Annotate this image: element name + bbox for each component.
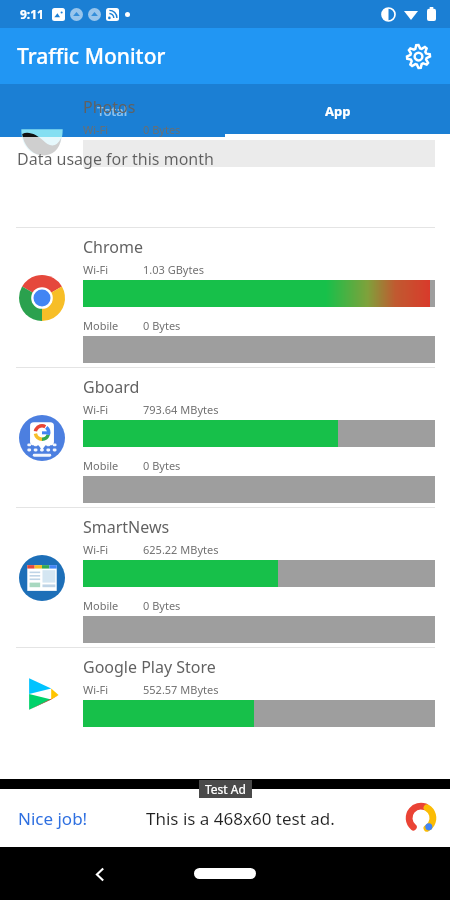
button[interactable]: Total <box>0 84 225 137</box>
staticText: 1.03 GBytes <box>143 262 204 277</box>
button[interactable]: Nice job! <box>0 789 450 847</box>
button[interactable]: Settings <box>396 34 440 78</box>
button[interactable]: Back <box>82 856 118 892</box>
staticText: Wi-Fi <box>83 402 109 417</box>
staticText: SmartNews <box>83 516 170 538</box>
staticText: Mobile <box>83 598 119 613</box>
button[interactable]: Photos <box>0 88 450 178</box>
button[interactable]: SmartNews <box>0 508 450 647</box>
staticText: Total <box>97 102 128 120</box>
staticText: 0 Bytes <box>143 598 181 613</box>
staticText: 552.57 MBytes <box>143 682 219 697</box>
staticText: Data usage for this month <box>17 148 214 170</box>
button[interactable]: App <box>225 84 450 137</box>
button[interactable]: Google Play Store <box>0 648 450 740</box>
staticText: 625.22 MBytes <box>143 542 219 557</box>
button[interactable]: Home <box>194 868 256 879</box>
staticText: Gboard <box>83 376 140 398</box>
staticText: Wi-Fi <box>83 122 109 137</box>
staticText: Traffic Monitor <box>17 42 166 71</box>
staticText: Wi-Fi <box>83 682 109 697</box>
staticText: Mobile <box>83 318 119 333</box>
button[interactable]: Chrome <box>0 228 450 367</box>
staticText: App <box>325 102 351 120</box>
staticText: Mobile <box>83 458 119 473</box>
staticText: 793.64 MBytes <box>143 402 219 417</box>
staticText: Chrome <box>83 236 143 258</box>
staticText: Nice job! <box>18 807 88 830</box>
staticText: Test Ad <box>205 781 246 797</box>
staticText: Photos <box>83 96 136 118</box>
staticText: Wi-Fi <box>83 542 109 557</box>
button[interactable]: Gboard <box>0 368 450 507</box>
staticText: 0 Bytes <box>143 122 181 137</box>
staticText: This is a 468x60 test ad. <box>146 807 335 830</box>
staticText: 0 Bytes <box>143 318 181 333</box>
staticText: 9:11 <box>20 6 44 22</box>
staticText: 0 Bytes <box>143 458 181 473</box>
staticText: Wi-Fi <box>83 262 109 277</box>
staticText: Google Play Store <box>83 656 216 678</box>
